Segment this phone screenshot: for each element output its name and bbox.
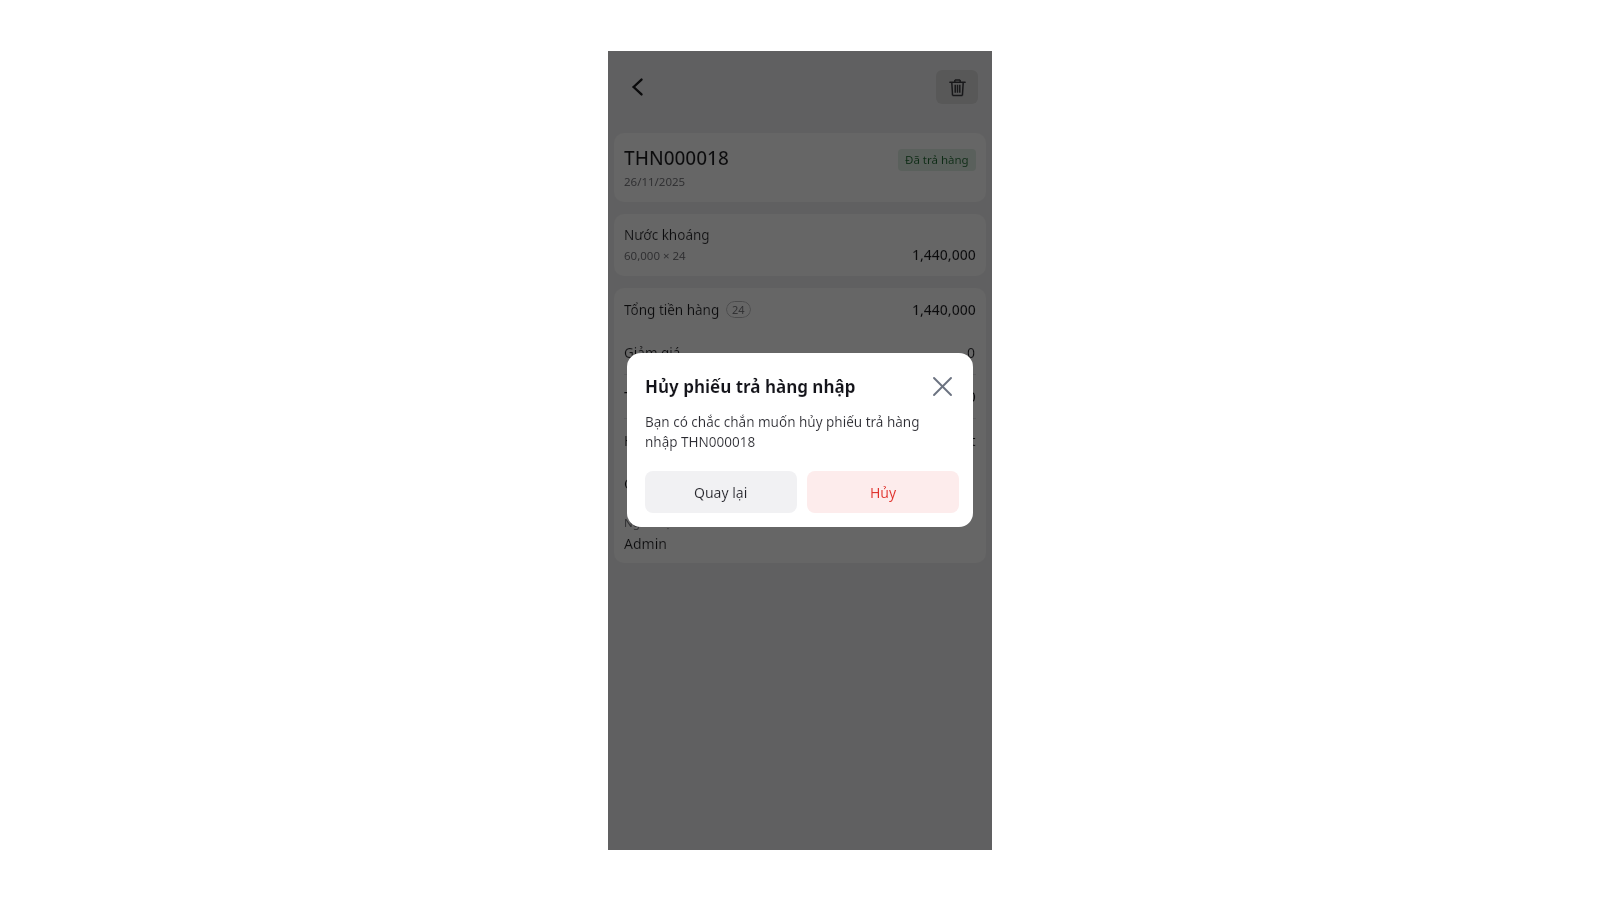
staticText: 1,440,000 xyxy=(912,387,976,406)
button[interactable]: Quay lại xyxy=(645,471,797,513)
button[interactable]: Close xyxy=(925,369,959,403)
button[interactable]: Back xyxy=(616,65,660,109)
button[interactable]: Hủy xyxy=(807,471,959,513)
staticText: Tiền mặt xyxy=(918,431,976,450)
staticText: Bạn có chắc chắn muốn hủy phiếu trả hàng… xyxy=(645,413,933,451)
button[interactable]: Giảm giá xyxy=(614,331,986,374)
staticText: Hình thức xyxy=(624,432,687,450)
staticText: 0 xyxy=(967,343,976,362)
staticText: 24 xyxy=(732,302,745,317)
button[interactable]: Ghi chú xyxy=(614,462,986,505)
staticText: Nước khoáng xyxy=(624,226,710,244)
button[interactable]: Delete xyxy=(936,70,978,104)
staticText: Tổng cộng xyxy=(624,388,691,406)
staticText: Admin xyxy=(624,534,667,553)
staticText: Hủy xyxy=(870,483,897,502)
staticText: Quay lại xyxy=(694,483,748,502)
button[interactable]: Hình thức xyxy=(614,419,986,462)
staticText: Giảm giá xyxy=(624,344,681,362)
staticText: Hủy phiếu trả hàng nhập xyxy=(645,375,856,398)
button[interactable]: Nước khoáng xyxy=(614,214,986,276)
staticText: Ghi chú xyxy=(624,475,673,493)
staticText: Đã trả hàng xyxy=(905,152,969,168)
staticText: Tổng tiền hàng xyxy=(624,301,720,319)
staticText: Người tạo xyxy=(624,515,679,531)
staticText: 60,000 × 24 xyxy=(624,248,686,264)
staticText: THN000018 xyxy=(624,145,729,171)
button[interactable]: Tổng cộng xyxy=(614,375,986,418)
button[interactable]: Người tạo xyxy=(614,505,986,563)
button[interactable]: Tổng tiền hàng xyxy=(614,288,986,331)
button[interactable]: THN000018 xyxy=(614,133,986,202)
staticText: 1,440,000 xyxy=(912,300,976,319)
staticText: 1,440,000 xyxy=(912,245,976,264)
staticText: 26/11/2025 xyxy=(624,174,686,190)
